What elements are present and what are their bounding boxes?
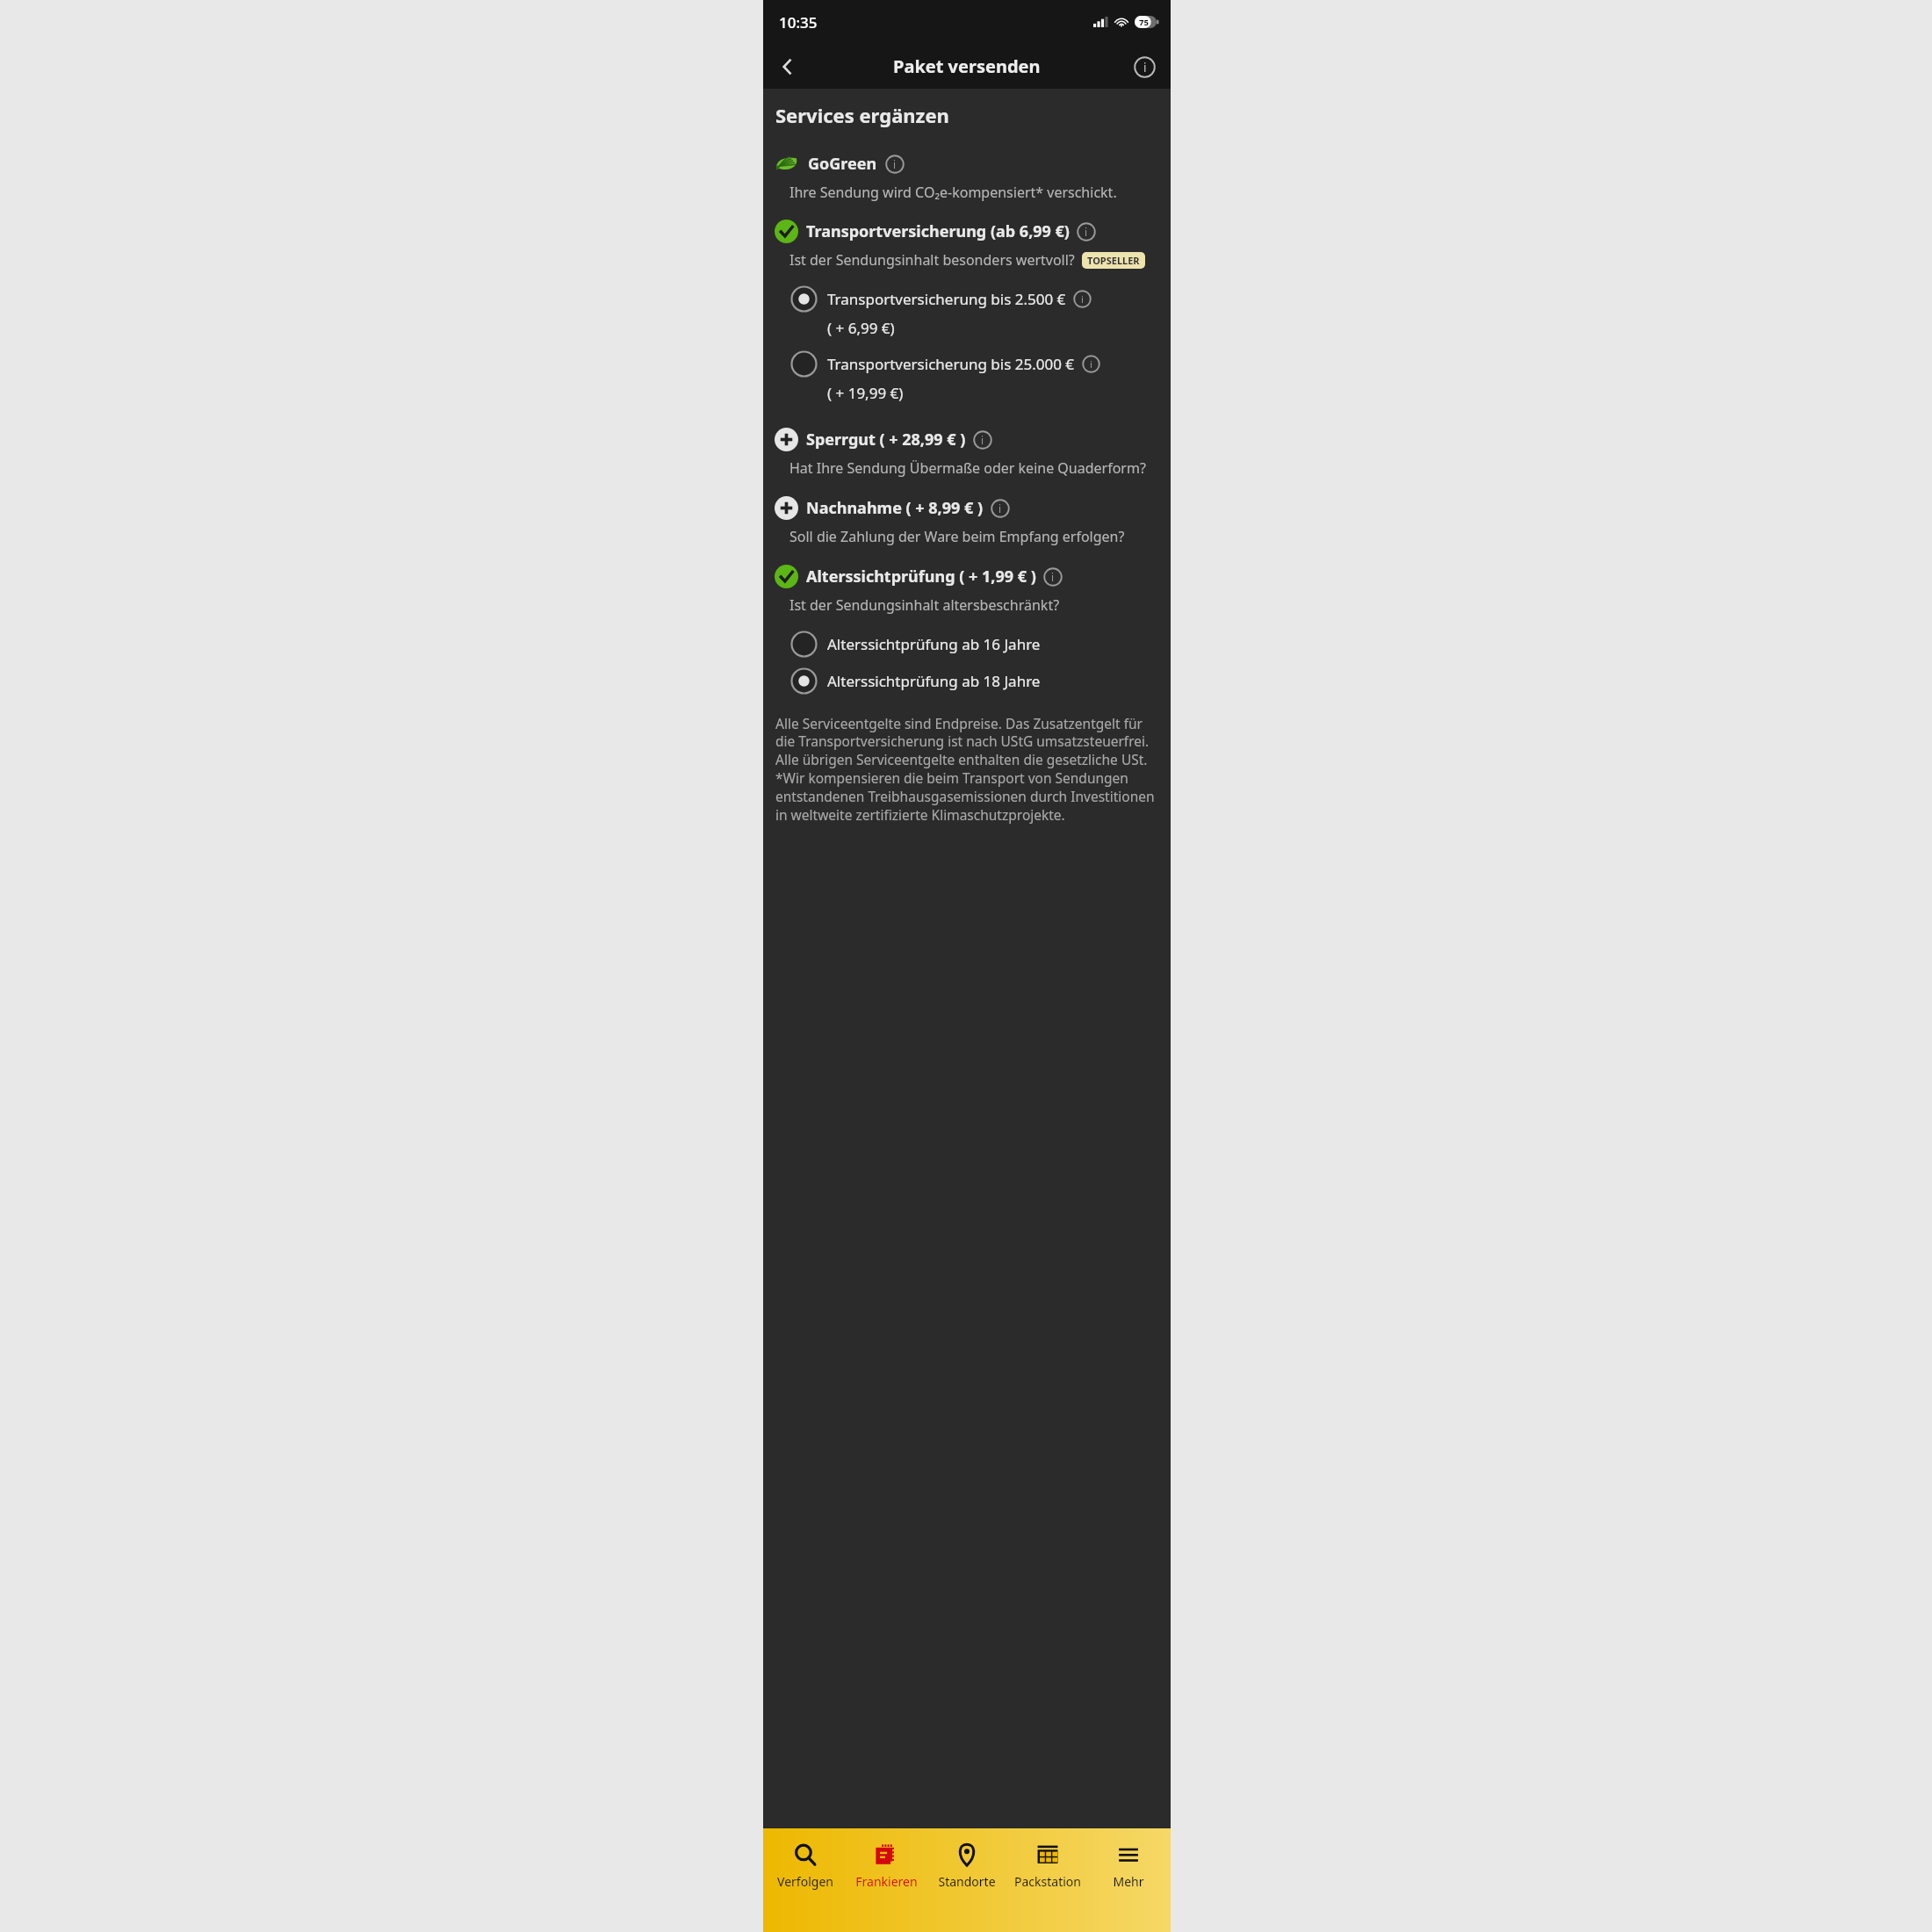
button[interactable]: Frankieren xyxy=(847,1837,925,1893)
button[interactable]: Nachnahme ( + 8,99 € ) xyxy=(769,496,1164,520)
staticText: Ihre Sendung wird CO₂e-kompensiert* vers… xyxy=(789,183,1117,202)
staticText: Alterssichtprüfung ab 18 Jahre xyxy=(827,671,1041,691)
staticText: i xyxy=(893,157,897,171)
staticText: 10:35 xyxy=(779,12,818,32)
staticText: Ist der Sendungsinhalt besonders wertvol… xyxy=(789,250,1075,270)
staticText: i xyxy=(1085,225,1088,239)
staticText: i xyxy=(1090,357,1092,371)
staticText: Mehr xyxy=(1113,1873,1144,1890)
staticText: Transportversicherung bis 2.500 € xyxy=(827,289,1066,309)
staticText: i xyxy=(1081,292,1084,306)
staticText: Ist der Sendungsinhalt altersbeschränkt? xyxy=(789,595,1060,615)
staticText: Alterssichtprüfung ( + 1,99 € ) xyxy=(806,566,1036,588)
staticText: Services ergänzen xyxy=(775,102,949,128)
staticText: Paket versenden xyxy=(893,54,1041,78)
staticText: ( + 6,99 €) xyxy=(827,318,895,338)
staticText: Nachnahme ( + 8,99 € ) xyxy=(806,497,984,519)
staticText: i xyxy=(998,501,1002,515)
button[interactable]: Sperrgut ( + 28,99 € ) xyxy=(769,428,1164,451)
button[interactable]: GoGreen xyxy=(769,153,1164,175)
staticText: i xyxy=(981,433,984,447)
button[interactable]: Alterssichtprüfung ab 18 Jahre xyxy=(769,667,1164,695)
staticText: GoGreen xyxy=(808,153,877,175)
staticText: Transportversicherung (ab 6,99 €) xyxy=(806,220,1070,242)
button[interactable]: Standorte xyxy=(928,1837,1006,1893)
button[interactable]: Mehr xyxy=(1090,1837,1167,1893)
button[interactable]: Back xyxy=(768,47,807,86)
staticText: Sperrgut ( + 28,99 € ) xyxy=(806,429,966,451)
staticText: 75 xyxy=(1139,17,1149,28)
staticText: Transportversicherung bis 25.000 € xyxy=(827,354,1075,374)
staticText: Standorte xyxy=(938,1873,996,1890)
staticText: i xyxy=(1051,570,1055,584)
button[interactable]: Alterssichtprüfung ab 16 Jahre xyxy=(769,631,1164,658)
button[interactable]: Packstation xyxy=(1009,1837,1086,1893)
button[interactable]: Transportversicherung (ab 6,99 €) xyxy=(769,220,1164,243)
button[interactable]: Verfolgen xyxy=(767,1837,844,1893)
staticText: Packstation xyxy=(1014,1873,1081,1890)
staticText: Verfolgen xyxy=(777,1873,833,1890)
staticText: ( + 19,99 €) xyxy=(827,383,904,403)
button[interactable]: Transportversicherung bis 2.500 € xyxy=(769,285,1164,338)
button[interactable]: Transportversicherung bis 25.000 € xyxy=(769,350,1164,403)
staticText: Alterssichtprüfung ab 16 Jahre xyxy=(827,634,1041,654)
staticText: Hat Ihre Sendung Übermaße oder keine Qua… xyxy=(789,458,1146,478)
staticText: i xyxy=(1143,60,1147,76)
staticText: Frankieren xyxy=(855,1873,918,1890)
button[interactable]: Alterssichtprüfung ( + 1,99 € ) xyxy=(769,565,1164,588)
button[interactable]: Info xyxy=(1127,49,1162,84)
staticText: Alle Serviceentgelte sind Endpreise. Das… xyxy=(775,714,1156,825)
staticText: TOPSELLER xyxy=(1087,254,1140,267)
staticText: Soll die Zahlung der Ware beim Empfang e… xyxy=(789,527,1125,546)
